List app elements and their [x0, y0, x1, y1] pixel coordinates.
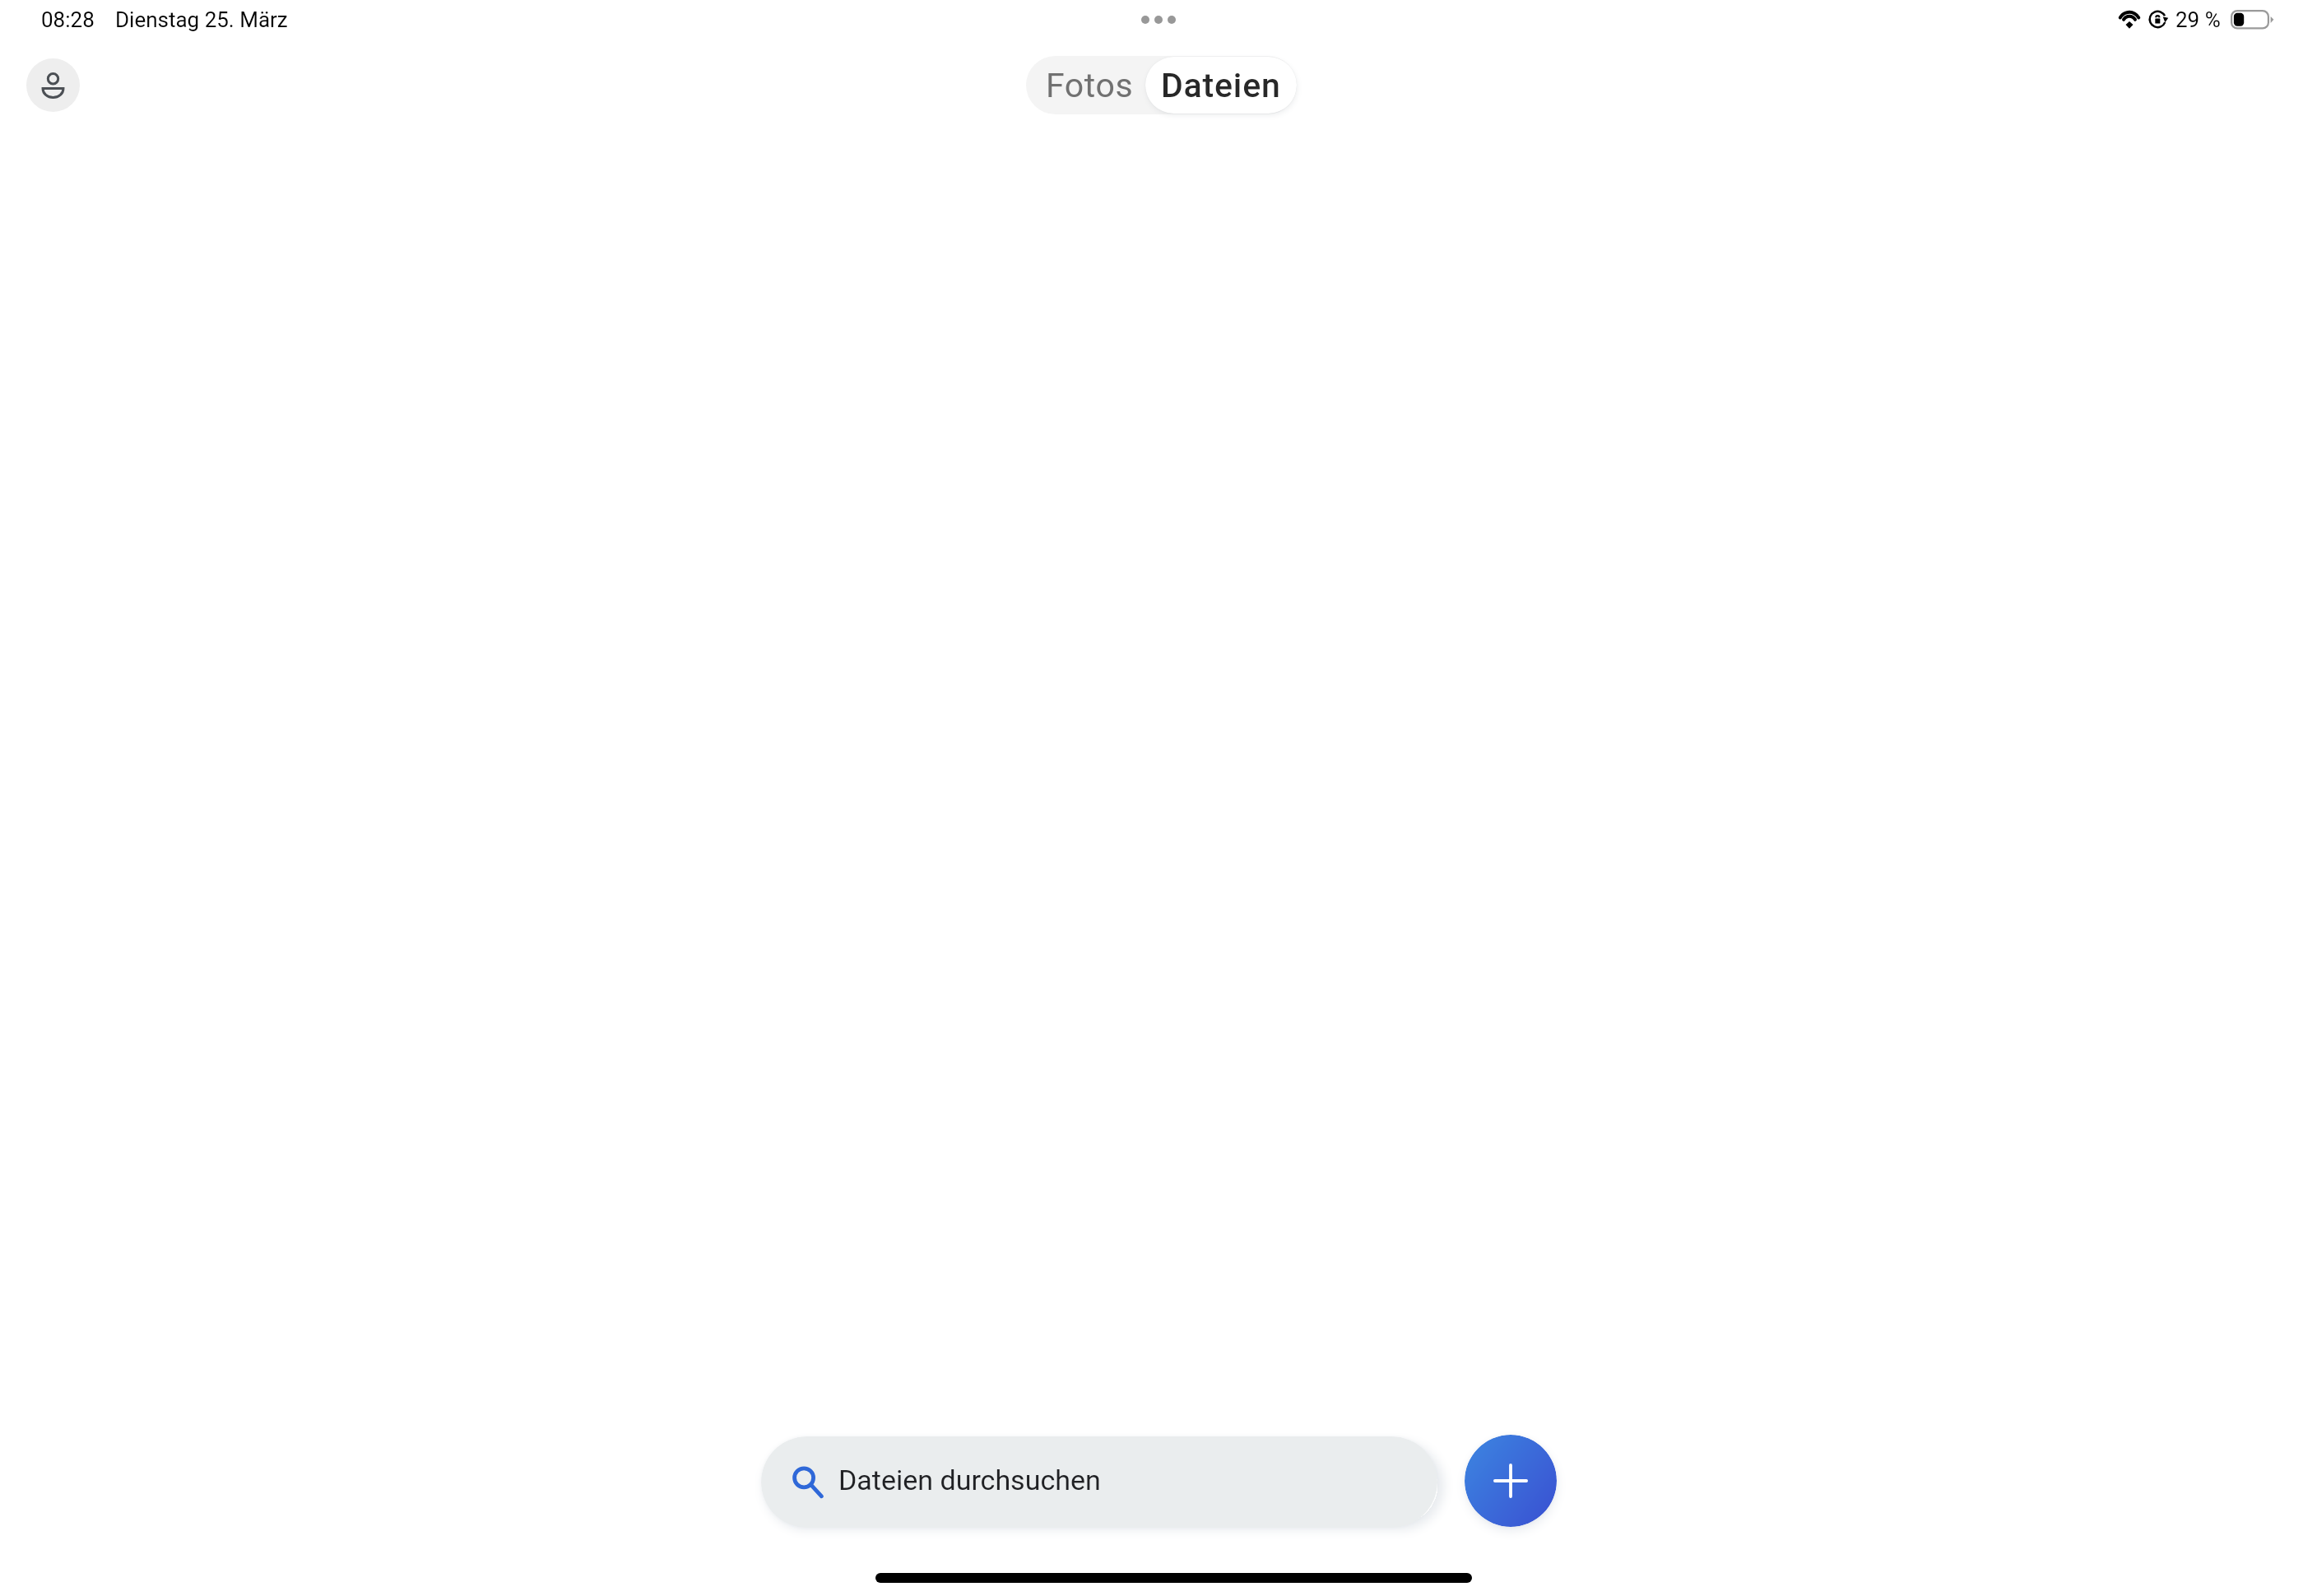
staticText: Dateien: [1161, 66, 1281, 105]
staticText: 08:28: [41, 7, 95, 32]
staticText: Fotos: [1046, 66, 1134, 105]
staticText: 29 %: [2175, 7, 2221, 32]
button[interactable]: Dateien durchsuchen: [761, 1436, 1437, 1528]
staticText: Dateien durchsuchen: [838, 1464, 1101, 1496]
button[interactable]: Dateien: [1145, 57, 1297, 114]
button[interactable]: Profil: [26, 58, 80, 112]
button[interactable]: Fotos: [1026, 56, 1153, 114]
staticText: Dienstag 25. März: [115, 7, 288, 32]
button[interactable]: Hinzufügen: [1465, 1435, 1557, 1527]
